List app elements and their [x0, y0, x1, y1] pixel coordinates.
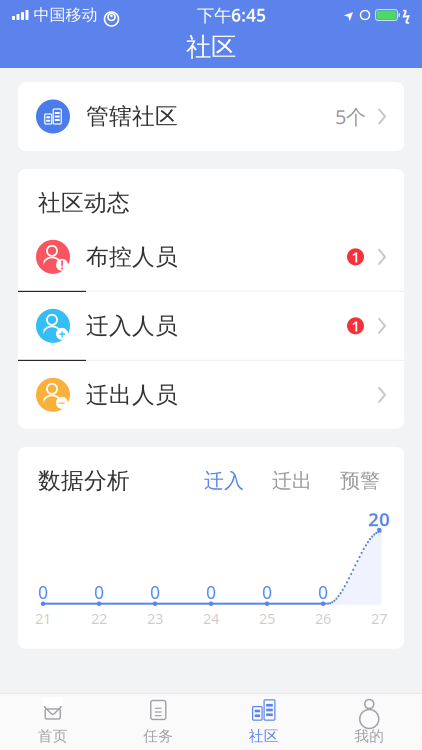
staticText: 社区 — [186, 31, 236, 62]
staticText: 我的 — [354, 727, 384, 745]
staticText: 迁入人员 — [86, 312, 178, 340]
staticText: 23 — [147, 609, 163, 628]
staticText: 布控人员 — [86, 243, 178, 271]
button[interactable]: 首页 — [0, 695, 105, 747]
staticText: 1 — [351, 247, 359, 267]
staticText: 0 — [38, 581, 48, 604]
staticText: 社区 — [249, 727, 279, 745]
staticText: 迁入 — [204, 468, 244, 493]
button[interactable]: 迁出 — [250, 468, 318, 493]
staticText: ϟ — [402, 5, 410, 25]
button[interactable]: + — [18, 292, 404, 361]
staticText: 0 — [94, 581, 104, 604]
button[interactable]: 预警 — [318, 468, 386, 493]
button[interactable]: ! — [18, 223, 404, 292]
button[interactable]: 管辖社区 — [18, 82, 404, 151]
staticText: 中国移动 — [33, 5, 97, 25]
button[interactable]: − — [18, 361, 404, 429]
staticText: ➤ — [343, 7, 354, 22]
staticText: 26 — [315, 609, 331, 628]
staticText: − — [58, 395, 65, 411]
staticText: 1 — [351, 316, 359, 336]
staticText: 27 — [371, 609, 387, 628]
button[interactable]: 我的 — [316, 695, 422, 747]
staticText: 数据分析 — [38, 467, 130, 495]
staticText: 管辖社区 — [86, 103, 178, 130]
staticText: 20 — [368, 507, 390, 531]
staticText: + — [58, 326, 65, 342]
staticText: 社区动态 — [38, 189, 130, 217]
staticText: 0 — [262, 581, 272, 604]
staticText: 0 — [318, 581, 328, 604]
staticText: 任务 — [143, 727, 173, 745]
staticText: 24 — [203, 609, 219, 628]
staticText: 0 — [150, 581, 160, 604]
staticText: 22 — [91, 609, 107, 628]
staticText: 25 — [259, 609, 275, 628]
staticText: 迁出人员 — [86, 381, 178, 409]
staticText: ! — [60, 257, 63, 273]
button[interactable]: 社区 — [211, 695, 316, 747]
staticText: 迁出 — [272, 468, 312, 493]
staticText: 21 — [35, 609, 51, 628]
button[interactable]: 迁入 — [198, 468, 250, 493]
staticText: 下午6:45 — [197, 3, 266, 26]
button[interactable]: 任务 — [105, 695, 211, 747]
staticText: 首页 — [38, 727, 68, 745]
staticText: 5个 — [335, 103, 366, 130]
staticText: 0 — [206, 581, 216, 604]
staticText: 预警 — [340, 468, 380, 493]
